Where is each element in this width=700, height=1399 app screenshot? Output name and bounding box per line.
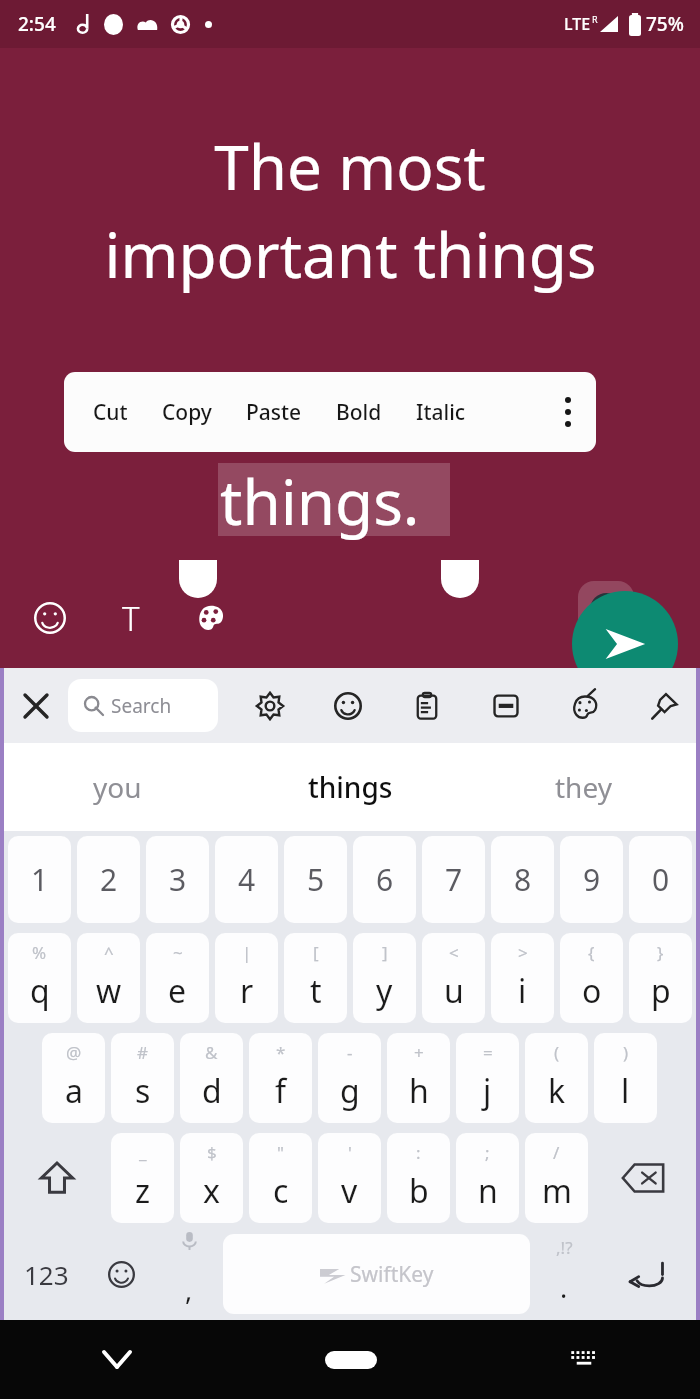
staticText: c — [273, 1169, 289, 1213]
button[interactable]: # — [111, 1033, 174, 1123]
button[interactable]: Backspace — [591, 1128, 695, 1228]
button[interactable]: + — [387, 1033, 450, 1123]
button[interactable]: Comma and voice input — [155, 1228, 223, 1320]
staticText: @ — [66, 1041, 82, 1064]
button[interactable]: @ — [42, 1033, 105, 1123]
button[interactable]: ~ — [146, 933, 209, 1023]
button[interactable]: Shift — [5, 1128, 108, 1228]
button[interactable]: things — [234, 743, 467, 831]
button[interactable]: Settings — [244, 680, 296, 732]
button[interactable]: 8 — [491, 836, 554, 923]
staticText: f — [275, 1069, 287, 1113]
staticText: " — [277, 1141, 284, 1164]
button[interactable]: ] — [353, 933, 416, 1023]
button[interactable]: Switch keyboard — [467, 1320, 700, 1399]
staticText: things. — [220, 459, 420, 543]
button[interactable]: Bold — [336, 372, 382, 452]
staticText: Bold — [336, 398, 382, 427]
button[interactable]: $ — [180, 1133, 243, 1223]
button[interactable]: Home — [234, 1320, 467, 1399]
button[interactable]: Emoji keyboard — [87, 1228, 155, 1320]
staticText: : — [416, 1141, 421, 1164]
button[interactable]: More options — [540, 372, 596, 452]
button[interactable]: ^ — [77, 933, 140, 1023]
button[interactable]: : — [387, 1133, 450, 1223]
staticText: > — [518, 941, 528, 964]
button[interactable]: * — [249, 1033, 312, 1123]
button[interactable]: 1 — [8, 836, 71, 923]
button[interactable]: Space — [223, 1234, 530, 1314]
button[interactable]: 7 — [422, 836, 485, 923]
button[interactable]: { — [560, 933, 623, 1023]
button[interactable]: 4 — [215, 836, 278, 923]
button[interactable]: 3 — [146, 836, 209, 923]
button[interactable]: 5 — [284, 836, 347, 923]
staticText: j — [483, 1069, 492, 1113]
button[interactable]: Text style — [106, 593, 156, 643]
button[interactable]: 0 — [629, 836, 692, 923]
button[interactable]: GIF — [480, 680, 532, 732]
button[interactable]: Copy — [162, 372, 212, 452]
button[interactable]: 6 — [353, 836, 416, 923]
staticText: Paste — [246, 398, 302, 427]
staticText: _ — [139, 1141, 147, 1164]
button[interactable]: Paste — [246, 372, 302, 452]
button[interactable]: Themes — [559, 680, 611, 732]
staticText: b — [409, 1169, 429, 1213]
button[interactable]: " — [249, 1133, 312, 1223]
button[interactable]: = — [456, 1033, 519, 1123]
staticText: x — [203, 1169, 220, 1213]
button[interactable]: Italic — [416, 372, 466, 452]
button[interactable]: > — [491, 933, 554, 1023]
staticText: 3 — [169, 859, 187, 900]
staticText: SwiftKey — [350, 1260, 434, 1289]
staticText: = — [483, 1041, 493, 1064]
staticText: T — [122, 596, 140, 641]
button[interactable]: you — [0, 743, 234, 831]
button[interactable]: Emoji — [25, 593, 75, 643]
staticText: + — [414, 1041, 424, 1064]
button[interactable]: < — [422, 933, 485, 1023]
button[interactable]: Clipboard — [401, 680, 453, 732]
button[interactable]: 123 — [5, 1228, 87, 1320]
staticText: / — [553, 1141, 560, 1164]
button[interactable]: Cut — [93, 372, 128, 452]
button[interactable]: Hide keyboard — [0, 1320, 234, 1399]
staticText: g — [340, 1069, 360, 1113]
button[interactable]: & — [180, 1033, 243, 1123]
button[interactable]: Search — [68, 679, 218, 732]
button[interactable]: Background color — [186, 593, 236, 643]
button[interactable]: 2 — [77, 836, 140, 923]
button[interactable]: / — [525, 1133, 588, 1223]
staticText: * — [276, 1041, 286, 1064]
button[interactable]: Period — [530, 1228, 598, 1320]
button[interactable]: Close — [10, 680, 62, 732]
button[interactable]: Pin toolbar — [638, 680, 690, 732]
button[interactable]: Enter — [598, 1228, 695, 1320]
staticText: 2:54 — [18, 11, 56, 37]
button[interactable]: - — [318, 1033, 381, 1123]
staticText: 4 — [238, 859, 256, 900]
button[interactable]: 9 — [560, 836, 623, 923]
button[interactable]: ; — [456, 1133, 519, 1223]
button[interactable]: Send — [572, 591, 678, 697]
staticText: h — [409, 1069, 429, 1113]
staticText: ( — [554, 1041, 560, 1064]
button[interactable]: | — [215, 933, 278, 1023]
button[interactable]: % — [8, 933, 71, 1023]
staticText: you — [93, 768, 142, 806]
staticText: k — [548, 1069, 566, 1113]
button[interactable]: _ — [111, 1133, 174, 1223]
button[interactable]: Emoji — [322, 680, 374, 732]
button[interactable]: ' — [318, 1133, 381, 1223]
button[interactable]: } — [629, 933, 692, 1023]
button[interactable]: they — [467, 743, 700, 831]
button[interactable]: [ — [284, 933, 347, 1023]
button[interactable]: ( — [525, 1033, 588, 1123]
staticText: 7 — [445, 859, 463, 900]
staticText: they — [555, 768, 612, 806]
staticText: 6 — [376, 859, 394, 900]
button[interactable]: ) — [594, 1033, 657, 1123]
staticText: 0 — [652, 859, 670, 900]
staticText: important things — [104, 212, 597, 296]
